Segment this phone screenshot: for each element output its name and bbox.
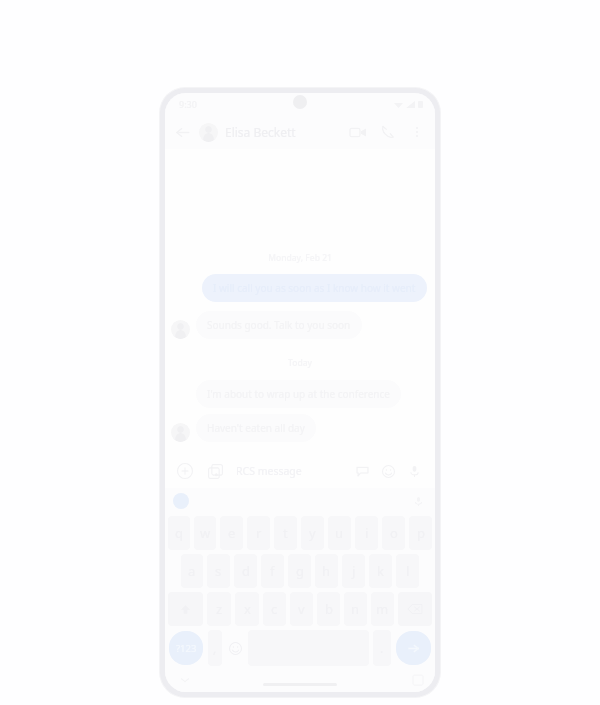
button[interactable]: Gallery — [203, 459, 227, 483]
button[interactable]: Send — [396, 631, 431, 665]
staticText: 9:30 — [179, 98, 197, 110]
staticText: ?123 — [176, 642, 197, 655]
staticText: Monday, Feb 21 — [268, 252, 332, 264]
button[interactable]: RCS message — [236, 464, 351, 478]
button[interactable]: Emoji — [377, 460, 399, 482]
button[interactable]: Elisa Beckett — [225, 124, 343, 140]
staticText: Today — [288, 357, 312, 369]
button[interactable]: I will call you as soon as I know how it… — [202, 274, 427, 302]
staticText: RCS message — [236, 464, 302, 478]
button[interactable]: Google Assistant — [173, 493, 189, 509]
button[interactable]: ?123 — [169, 631, 203, 665]
button[interactable]: Attach — [173, 459, 197, 483]
